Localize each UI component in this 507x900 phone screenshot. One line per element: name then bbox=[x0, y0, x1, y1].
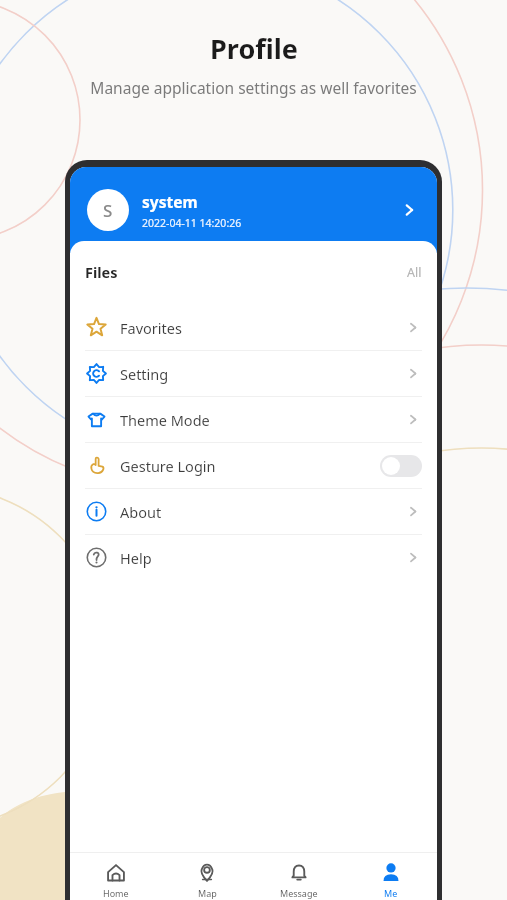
button[interactable]: Map bbox=[161, 853, 253, 900]
staticText: system bbox=[142, 191, 198, 212]
staticText: Profile bbox=[210, 30, 298, 67]
button[interactable]: Me bbox=[345, 853, 437, 900]
button[interactable]: Help bbox=[70, 535, 437, 580]
button[interactable]: Gesture Login toggle bbox=[380, 455, 422, 477]
button[interactable]: Gesture Login bbox=[70, 443, 437, 488]
staticText: Help bbox=[120, 548, 152, 568]
button[interactable]: Setting bbox=[70, 351, 437, 396]
staticText: About bbox=[120, 502, 162, 522]
button[interactable]: Theme Mode bbox=[70, 397, 437, 442]
staticText: Files bbox=[85, 262, 118, 282]
staticText: Setting bbox=[120, 364, 169, 384]
button[interactable]: All bbox=[407, 264, 422, 281]
staticText: Theme Mode bbox=[120, 410, 210, 430]
button[interactable]: S bbox=[70, 167, 437, 253]
staticText: Manage application settings as well favo… bbox=[90, 77, 417, 98]
staticText: Home bbox=[103, 887, 129, 899]
button[interactable]: Home bbox=[70, 853, 161, 900]
staticText: Favorites bbox=[120, 318, 182, 338]
staticText: Gesture Login bbox=[120, 456, 216, 476]
staticText: 2022-04-11 14:20:26 bbox=[142, 216, 242, 230]
button[interactable]: Favorites bbox=[70, 305, 437, 350]
button[interactable]: About bbox=[70, 489, 437, 534]
staticText: Map bbox=[198, 887, 217, 899]
staticText: Me bbox=[384, 887, 398, 899]
staticText: All bbox=[407, 264, 422, 281]
button[interactable]: Message bbox=[253, 853, 345, 900]
staticText: Message bbox=[280, 887, 318, 899]
staticText: S bbox=[103, 199, 113, 222]
